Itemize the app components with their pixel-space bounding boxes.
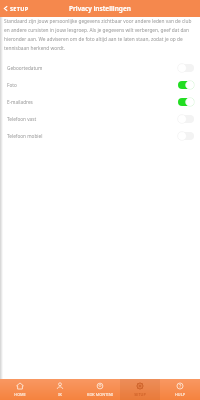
staticText: HOME [14, 392, 26, 397]
button[interactable]: SETUP [0, 3, 33, 14]
staticText: SETUP [134, 392, 146, 397]
button[interactable]: Foto [0, 76, 200, 93]
button[interactable]: SETUP [120, 379, 160, 400]
button[interactable]: HULP [160, 379, 200, 400]
button[interactable]: KOK MONTINI [80, 379, 120, 400]
button[interactable]: Telefoon vast [0, 110, 200, 127]
staticText: Privacy instellingen [69, 4, 131, 13]
button[interactable]: Geboortedatum [0, 59, 200, 76]
staticText: Telefoon mobiel [7, 133, 43, 139]
button[interactable]: IK [40, 379, 80, 400]
staticText: E-mailadres [7, 99, 33, 105]
staticText: Standaard zijn jouw persoonlijke gegeven… [4, 18, 196, 51]
staticText: KOK MONTINI [87, 392, 113, 397]
button[interactable]: E-mailadres [0, 93, 200, 110]
button[interactable]: Telefoon mobiel [0, 127, 200, 144]
staticText: HULP [175, 392, 185, 397]
staticText: Geboortedatum [7, 65, 43, 71]
staticText: Foto [7, 82, 17, 88]
button[interactable]: HOME [0, 379, 40, 400]
staticText: IK [58, 392, 62, 397]
staticText: Telefoon vast [7, 116, 37, 122]
staticText: SETUP [10, 5, 29, 12]
